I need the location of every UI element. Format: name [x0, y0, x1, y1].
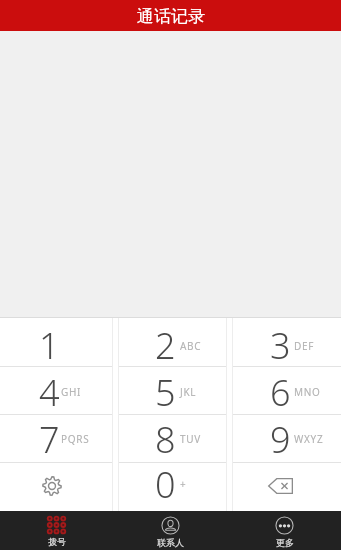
staticText: 更多	[276, 537, 294, 548]
staticText: 9	[270, 415, 291, 463]
staticText: DEF	[294, 339, 315, 353]
staticText: TUV	[180, 432, 201, 446]
staticText: PQRS	[61, 432, 90, 446]
button[interactable]: Settings	[0, 463, 112, 511]
staticText: 通话记录	[137, 6, 205, 27]
staticText: 0	[155, 460, 176, 508]
button[interactable]: 9	[233, 415, 341, 463]
staticText: MNO	[294, 385, 321, 399]
staticText: JKL	[180, 385, 197, 399]
button[interactable]: 2	[119, 318, 226, 367]
staticText: 7	[39, 415, 60, 463]
button[interactable]: 联系人	[113, 511, 227, 550]
button[interactable]: 通话记录	[0, 0, 341, 31]
staticText: 联系人	[157, 537, 184, 548]
staticText: +	[180, 477, 187, 491]
staticText: GHI	[61, 385, 82, 399]
button[interactable]: Backspace	[233, 463, 341, 511]
button[interactable]: 更多	[227, 511, 341, 550]
staticText: 8	[155, 415, 176, 463]
button[interactable]: 4	[0, 367, 112, 415]
staticText: ABC	[180, 339, 202, 353]
staticText: 6	[270, 368, 291, 416]
staticText: 1	[39, 321, 60, 370]
staticText: 3	[270, 321, 291, 370]
button[interactable]: 6	[233, 367, 341, 415]
button[interactable]: 7	[0, 415, 112, 463]
staticText: 5	[155, 368, 176, 416]
staticText: 4	[39, 368, 60, 416]
button[interactable]: 8	[119, 415, 226, 463]
button[interactable]: 拨号	[0, 511, 113, 550]
staticText: 2	[155, 321, 176, 370]
staticText: WXYZ	[294, 432, 324, 446]
staticText: 拨号	[48, 536, 66, 547]
button[interactable]: 5	[119, 367, 226, 415]
button[interactable]: 0	[119, 463, 226, 511]
button[interactable]: 3	[233, 318, 341, 367]
button[interactable]: 1	[0, 318, 112, 367]
